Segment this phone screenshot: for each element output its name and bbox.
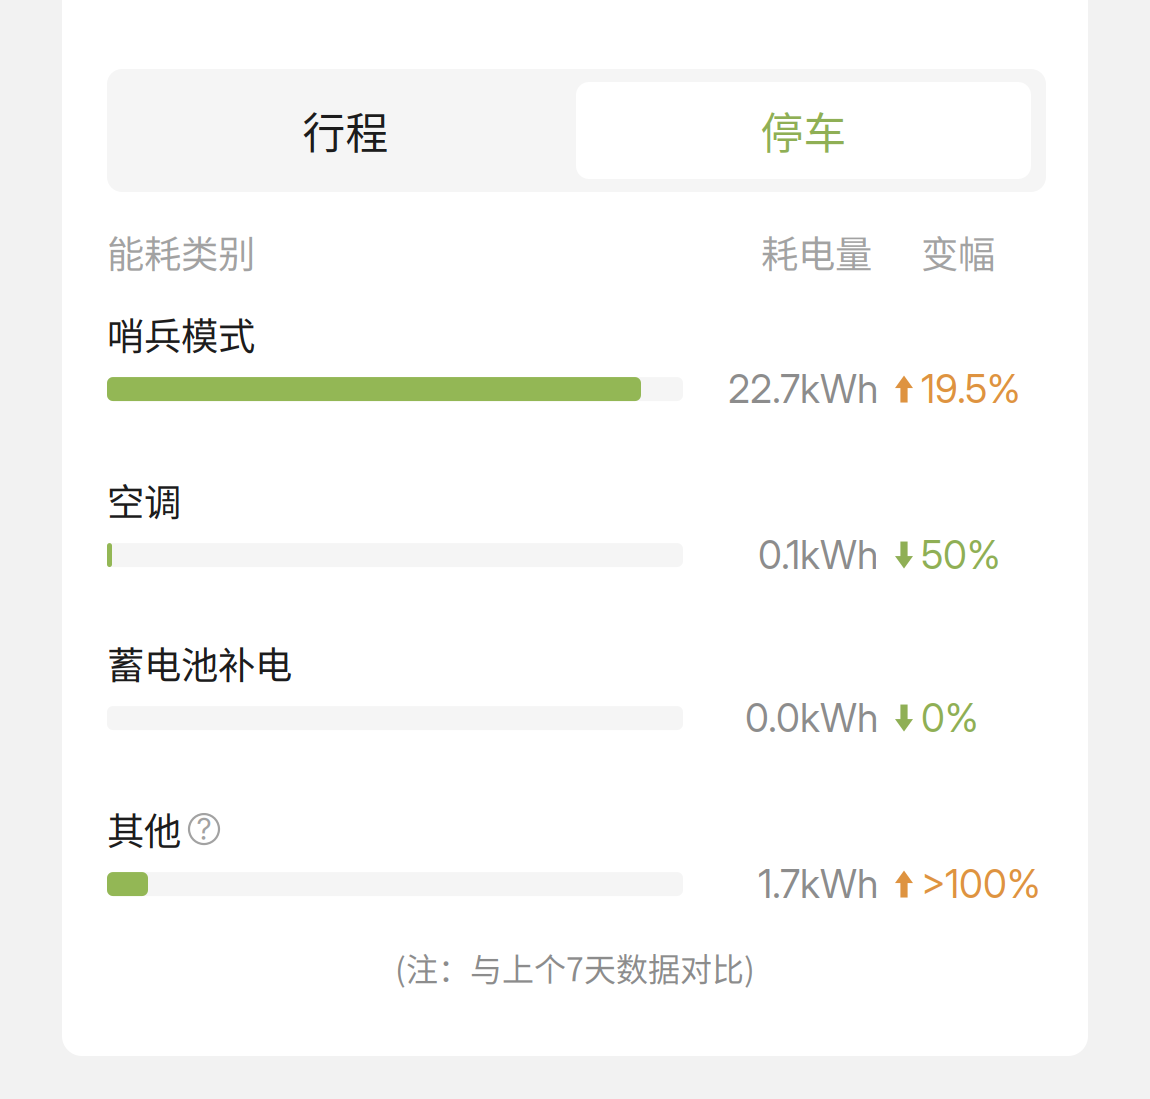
staticText: 行程 bbox=[302, 100, 388, 161]
staticText: 0.1kWh bbox=[758, 532, 878, 578]
staticText: 能耗类别 bbox=[107, 225, 255, 279]
button[interactable]: 其他 说明 bbox=[189, 814, 219, 844]
staticText: >100% bbox=[921, 861, 1041, 907]
staticText: 空调 bbox=[107, 473, 181, 527]
staticText: 1.7kWh bbox=[758, 861, 878, 907]
staticText: 变幅 bbox=[921, 225, 995, 279]
staticText: 22.7kWh bbox=[728, 366, 878, 412]
staticText: 50% bbox=[921, 532, 1001, 578]
staticText: 其他 bbox=[107, 802, 181, 856]
staticText: 19.5% bbox=[921, 366, 1021, 412]
staticText: 耗电量 bbox=[761, 225, 872, 279]
staticText: 0.0kWh bbox=[745, 695, 878, 741]
staticText: (注：与上个7天数据对比) bbox=[395, 944, 755, 990]
staticText: 蓄电池补电 bbox=[107, 636, 292, 690]
staticText: 哨兵模式 bbox=[107, 307, 255, 361]
button[interactable]: 行程 bbox=[107, 69, 584, 192]
staticText: ? bbox=[196, 811, 211, 847]
staticText: 停车 bbox=[760, 100, 846, 161]
staticText: 0% bbox=[921, 695, 979, 741]
button[interactable]: 停车 bbox=[576, 82, 1031, 179]
